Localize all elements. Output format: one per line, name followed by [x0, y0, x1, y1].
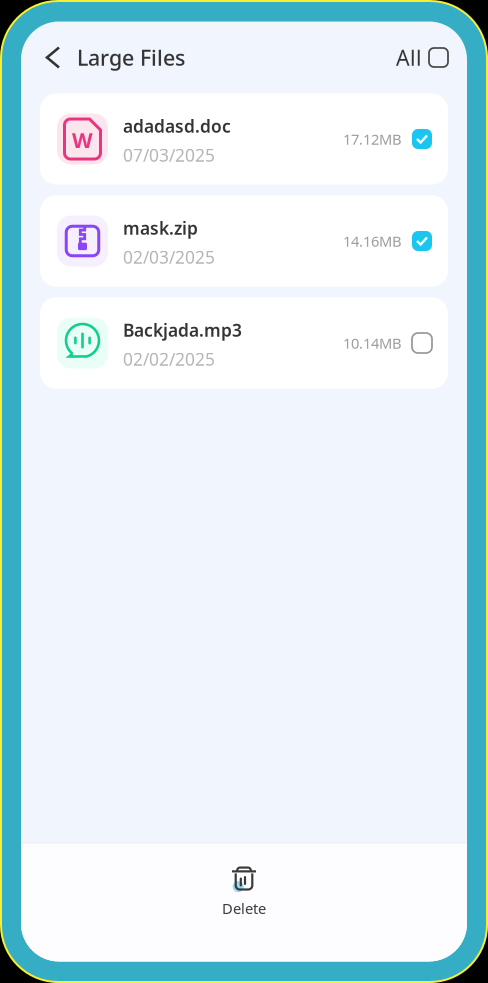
staticText: All: [396, 43, 422, 72]
staticText: adadasd.doc: [123, 114, 231, 137]
staticText: 17.12MB: [343, 129, 402, 149]
staticText: Delete: [222, 898, 266, 918]
button[interactable]: W: [40, 93, 448, 184]
staticText: 02/02/2025: [123, 347, 215, 370]
staticText: mask.zip: [123, 216, 198, 239]
staticText: Large Files: [77, 43, 185, 72]
button[interactable]: All: [396, 35, 448, 80]
staticText: W: [72, 126, 93, 154]
staticText: 14.16MB: [343, 231, 402, 251]
button[interactable]: Delete: [21, 843, 467, 961]
staticText: Backjada.mp3: [123, 318, 242, 341]
button[interactable]: Back: [41, 37, 65, 77]
staticText: 10.14MB: [343, 333, 402, 353]
button[interactable]: Backjada.mp3: [40, 297, 448, 388]
button[interactable]: mask.zip: [40, 195, 448, 286]
staticText: 02/03/2025: [123, 245, 215, 268]
staticText: 07/03/2025: [123, 143, 215, 166]
